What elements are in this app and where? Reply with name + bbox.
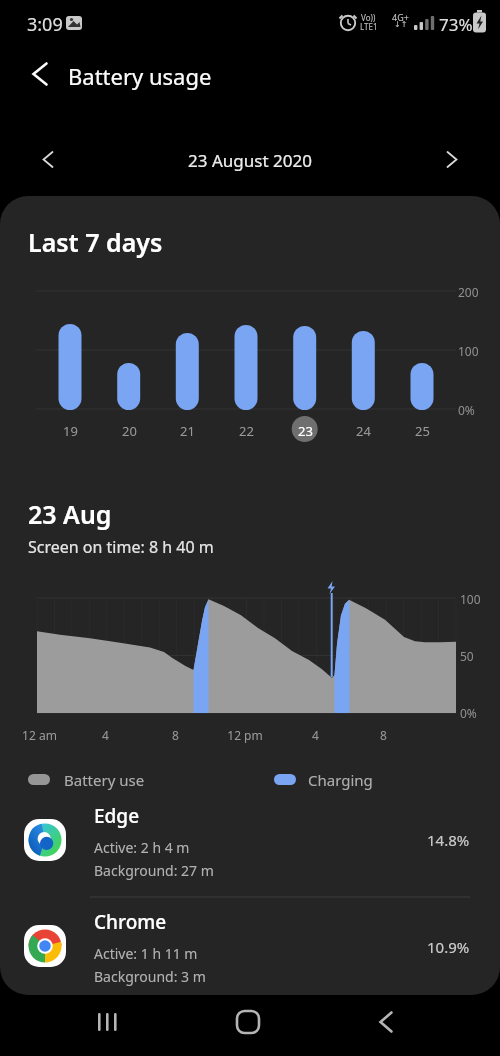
staticText: 12 am [22,727,57,743]
button[interactable] [362,998,410,1046]
staticText: 200 [458,284,479,300]
staticText: 4 [312,727,319,743]
staticText: 100 [460,591,481,607]
staticText: 8 [172,727,179,743]
staticText: Chrome [94,909,167,935]
staticText: 0% [458,402,475,418]
button[interactable] [84,998,132,1046]
button[interactable] [224,998,272,1046]
staticText: LTE1 [360,21,378,32]
staticText: 23 [298,422,313,440]
staticText: Screen on time: 8 h 40 m [28,536,214,558]
staticText: 21 [180,422,195,440]
staticText: 73% [439,13,473,36]
staticText: 0% [460,705,477,721]
button[interactable]: Chrome [0,909,500,995]
staticText: Active: 2 h 4 m [94,838,190,857]
staticText: Background: 3 m [94,967,206,986]
staticText: Battery use [64,770,145,790]
button[interactable] [20,54,60,94]
staticText: 24 [356,422,371,440]
staticText: 25 [415,422,430,440]
button[interactable] [30,142,66,178]
staticText: 10.9% [427,937,470,957]
staticText: Last 7 days [28,225,163,259]
staticText: 23 August 2020 [188,149,312,172]
staticText: 20 [122,422,137,440]
staticText: 19 [63,422,78,440]
staticText: 8 [380,727,387,743]
staticText: 14.8% [427,830,470,850]
button[interactable] [434,142,470,178]
staticText: Charging [308,770,373,790]
staticText: 3:09 [27,12,63,37]
staticText: Edge [94,803,140,829]
staticText: 23 Aug [28,497,112,531]
staticText: 4 [102,727,109,743]
staticText: 50 [460,648,474,664]
staticText: ↓↑ [394,20,408,29]
staticText: 22 [239,422,254,440]
button[interactable]: Edge [0,803,500,893]
staticText: Active: 1 h 11 m [94,944,198,963]
staticText: Battery usage [68,61,212,91]
staticText: 12 pm [227,727,263,743]
staticText: 100 [458,343,479,359]
staticText: Vo)) [361,12,376,23]
staticText: Background: 27 m [94,861,214,880]
staticText: 4G+ [392,11,409,23]
